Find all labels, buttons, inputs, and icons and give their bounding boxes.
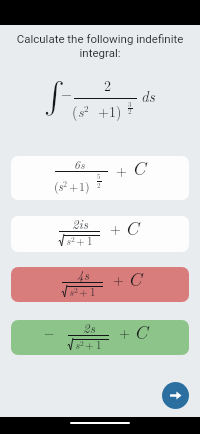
staticText: + <box>110 218 121 238</box>
staticText: s <box>78 101 84 121</box>
button[interactable]: 6s <box>11 156 189 200</box>
staticText: 4s <box>77 267 89 283</box>
staticText: C <box>125 216 139 241</box>
staticText: + <box>113 269 124 289</box>
staticText: 1 <box>109 101 116 121</box>
button[interactable]: 4s <box>11 267 189 302</box>
staticText: ( <box>54 177 59 194</box>
staticText: 2 <box>74 285 78 296</box>
staticText: C <box>134 320 148 345</box>
staticText: + <box>69 177 79 194</box>
staticText: ∫ <box>44 81 65 112</box>
staticText: − <box>61 83 72 103</box>
staticText: ) <box>85 177 90 194</box>
staticText: + <box>76 233 85 249</box>
staticText: C <box>128 267 142 292</box>
staticText: C <box>132 156 146 181</box>
staticText: s <box>58 177 63 194</box>
staticText: 2 <box>84 102 89 115</box>
staticText: 2 <box>128 106 132 116</box>
button[interactable]: Next question <box>162 382 189 409</box>
staticText: s <box>66 233 71 249</box>
staticText: + <box>79 284 88 300</box>
staticText: 3 <box>128 99 132 109</box>
staticText: ds <box>141 85 155 106</box>
button[interactable]: − <box>11 320 189 355</box>
staticText: 2s <box>83 320 95 336</box>
staticText: 2 <box>80 338 84 349</box>
staticText: 1 <box>96 337 102 353</box>
staticText: 1 <box>79 177 86 194</box>
staticText: 2 <box>71 234 75 245</box>
staticText: 2 <box>63 178 67 189</box>
button[interactable]: 2is <box>11 216 189 252</box>
staticText: 5 <box>97 171 101 181</box>
staticText: + <box>116 160 127 180</box>
staticText: 2is <box>72 216 88 232</box>
staticText: ( <box>72 101 78 121</box>
staticText: 1 <box>87 233 93 249</box>
staticText: ) <box>116 101 122 121</box>
staticText: + <box>98 101 109 121</box>
staticText: 6s <box>74 156 85 172</box>
staticText: 2 <box>104 75 111 95</box>
staticText: s <box>69 284 74 300</box>
staticText: 1 <box>90 284 96 300</box>
staticText: + <box>119 322 130 342</box>
staticText: Calculate the following indefinite integ… <box>7 32 193 60</box>
staticText: 2 <box>97 180 101 190</box>
staticText: + <box>85 337 94 353</box>
staticText: s <box>75 337 80 353</box>
staticText: − <box>44 323 55 341</box>
